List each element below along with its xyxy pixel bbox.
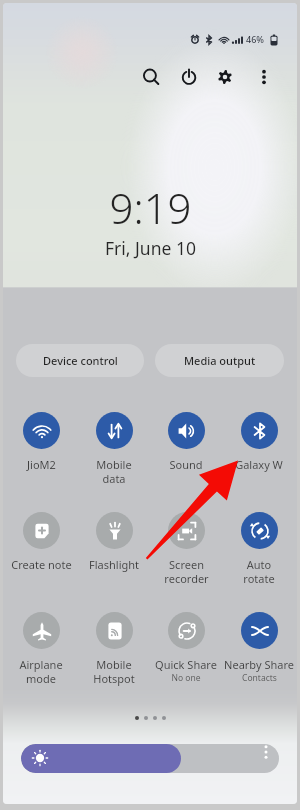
staticText: Device control [43, 353, 118, 368]
staticText: 9:19 [109, 179, 192, 236]
staticText: Fri, June 10 [105, 236, 196, 260]
button[interactable]: Brightness [21, 744, 279, 773]
button[interactable]: More options [250, 63, 278, 91]
staticText: Galaxy W [235, 457, 283, 472]
button[interactable]: Quick Share [151, 612, 221, 684]
staticText: No one [171, 672, 201, 684]
button[interactable]: Power off [175, 63, 203, 91]
staticText: JioM2 [27, 457, 56, 472]
button[interactable]: Airplane mode [6, 612, 76, 686]
button[interactable]: Media output [155, 344, 284, 377]
button[interactable]: Mobile Hotspot [79, 612, 149, 686]
button[interactable]: Screen recorder [151, 512, 221, 586]
staticText: Create note [11, 557, 72, 572]
button[interactable]: Device control [16, 344, 144, 377]
button[interactable]: Nearby Share [224, 612, 294, 684]
staticText: Screen recorder [164, 557, 209, 586]
button[interactable]: JioM2 [6, 412, 76, 472]
staticText: Sound [169, 457, 203, 472]
staticText: Contacts [242, 672, 277, 684]
button[interactable]: Sound [151, 412, 221, 472]
button[interactable]: Auto rotate [224, 512, 294, 586]
button[interactable]: Galaxy W [224, 412, 294, 472]
staticText: Nearby Share [224, 657, 294, 672]
button[interactable]: Mobile data [79, 412, 149, 486]
staticText: Media output [184, 353, 256, 368]
staticText: 46% [246, 33, 264, 45]
button[interactable]: Flashlight [79, 512, 149, 572]
staticText: Quick Share [155, 657, 217, 672]
staticText: Auto rotate [243, 557, 275, 586]
button[interactable]: Create note [6, 512, 76, 572]
button[interactable]: Search [137, 63, 165, 91]
staticText: Mobile data [96, 457, 132, 486]
staticText: Airplane mode [19, 657, 63, 686]
staticText: Mobile Hotspot [93, 657, 135, 686]
staticText: Flashlight [89, 557, 139, 572]
button[interactable]: Settings [211, 63, 239, 91]
